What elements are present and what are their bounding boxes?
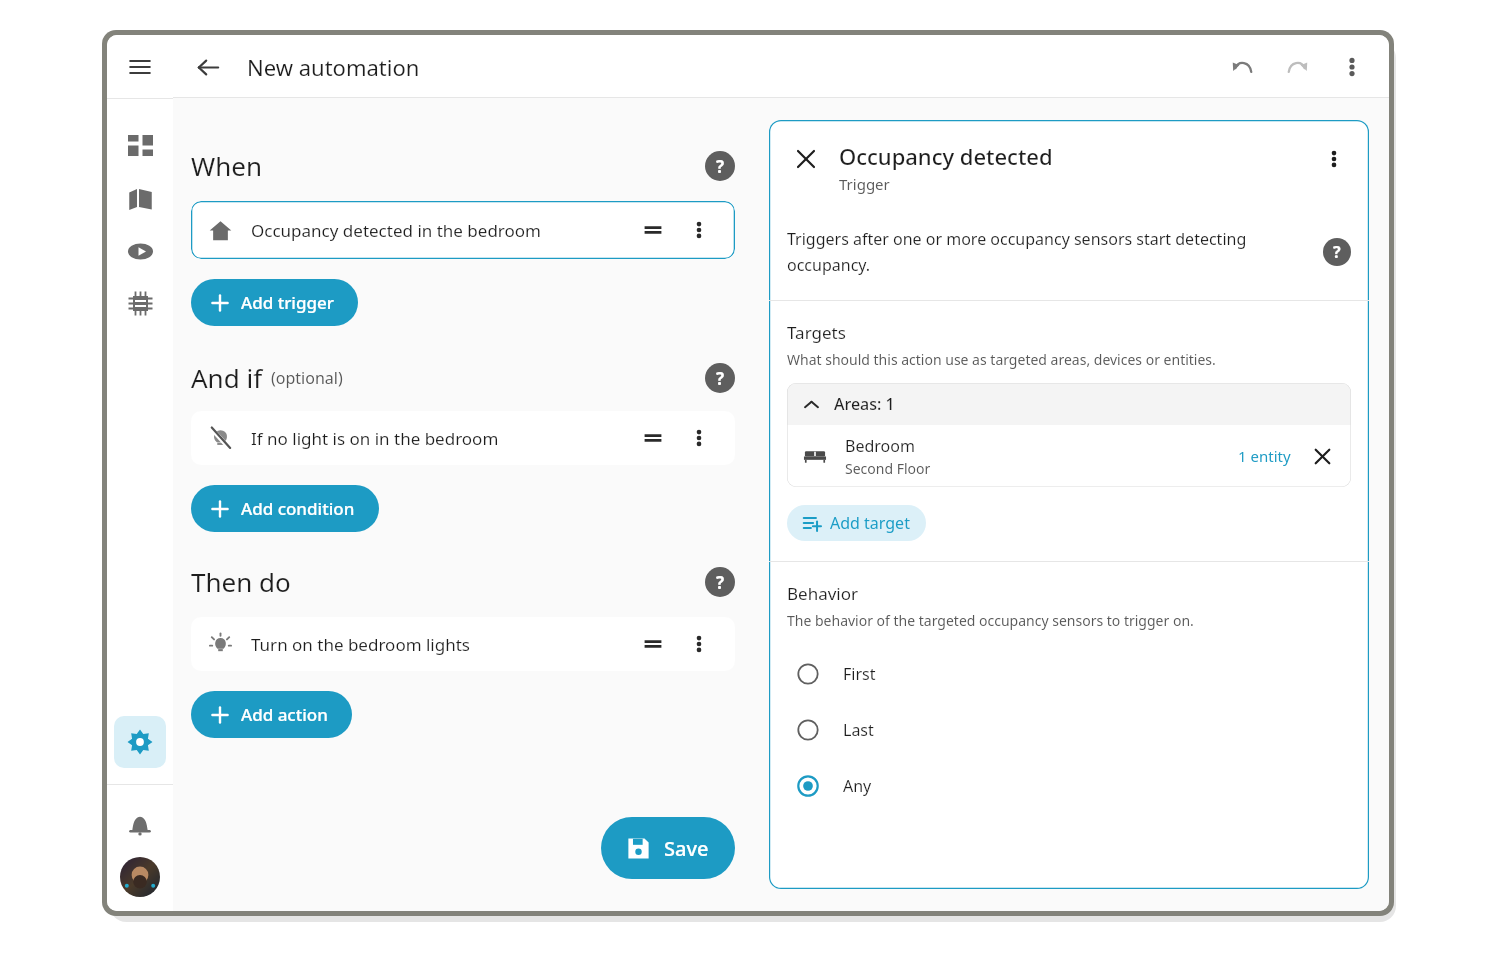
staticText: Second Floor [845, 459, 931, 478]
staticText: Behavior [787, 582, 859, 605]
staticText: New automation [247, 52, 420, 82]
staticText: ? [716, 571, 725, 594]
staticText: Occupancy detected in the bedroom [251, 219, 541, 242]
staticText: ? [1333, 241, 1341, 263]
button[interactable]: More options [681, 420, 717, 456]
button[interactable]: Reorder [635, 420, 671, 456]
button[interactable]: Add condition [191, 485, 379, 532]
button[interactable]: First [787, 646, 1351, 702]
staticText: Any [843, 775, 872, 797]
staticText: ? [716, 155, 725, 178]
button[interactable]: Save [601, 817, 735, 879]
staticText: When [191, 148, 262, 183]
button[interactable]: Developer tools [114, 277, 166, 329]
staticText: Occupancy detected [839, 141, 1053, 171]
staticText: And if [191, 360, 263, 395]
button[interactable]: Occupancy detected in the bedroom [191, 201, 735, 259]
button[interactable]: Help [705, 363, 735, 393]
button[interactable]: Back [185, 44, 231, 90]
button[interactable]: Add trigger [191, 279, 358, 326]
button[interactable]: Remove target [1305, 439, 1339, 473]
button[interactable]: Reorder [635, 212, 671, 248]
button[interactable]: User profile [120, 857, 160, 897]
staticText: Areas: 1 [834, 393, 895, 415]
staticText: What should this action use as targeted … [787, 350, 1216, 369]
staticText: First [843, 663, 876, 685]
staticText: (optional) [271, 367, 343, 389]
button[interactable]: Reorder [635, 626, 671, 662]
staticText: Add condition [241, 497, 355, 520]
button[interactable]: Media [114, 225, 166, 277]
button[interactable]: Turn on the bedroom lights [191, 617, 735, 671]
staticText: 1 entity [1238, 446, 1291, 466]
button[interactable]: More options [681, 626, 717, 662]
button[interactable]: Help [705, 567, 735, 597]
staticText: Add action [241, 703, 328, 726]
button[interactable]: Add action [191, 691, 352, 738]
staticText: Save [664, 835, 709, 862]
button[interactable]: Add target [787, 505, 926, 541]
button[interactable]: Redo [1275, 44, 1321, 90]
button[interactable]: Undo [1219, 44, 1265, 90]
staticText: Add target [830, 512, 910, 534]
staticText: The behavior of the targeted occupancy s… [787, 611, 1194, 630]
button[interactable]: More options [1329, 44, 1375, 90]
button[interactable]: If no light is on in the bedroom [191, 411, 735, 465]
staticText: Triggers after one or more occupancy sen… [787, 228, 1301, 276]
staticText: Last [843, 719, 874, 741]
staticText: Bedroom [845, 435, 915, 457]
button[interactable]: Close [787, 140, 825, 178]
button[interactable]: Bedroom [787, 425, 1351, 487]
button[interactable]: More options [681, 212, 717, 248]
button[interactable]: Notifications [118, 803, 162, 847]
button[interactable]: Help [1323, 238, 1351, 266]
staticText: Trigger [839, 174, 890, 194]
button[interactable]: Areas: 1 [787, 383, 1351, 425]
staticText: ? [716, 367, 725, 390]
staticText: Targets [787, 321, 846, 344]
button[interactable]: Overview [114, 121, 166, 173]
staticText: Add trigger [241, 291, 334, 314]
button[interactable]: Last [787, 702, 1351, 758]
staticText: Then do [191, 564, 291, 599]
button[interactable]: Settings [114, 716, 166, 768]
button[interactable]: More options [1315, 140, 1353, 178]
button[interactable]: Help [705, 151, 735, 181]
button[interactable]: Any [787, 758, 1351, 814]
button[interactable]: Menu [107, 35, 173, 98]
staticText: If no light is on in the bedroom [251, 427, 499, 450]
staticText: Turn on the bedroom lights [251, 633, 470, 656]
button[interactable]: Map [114, 173, 166, 225]
